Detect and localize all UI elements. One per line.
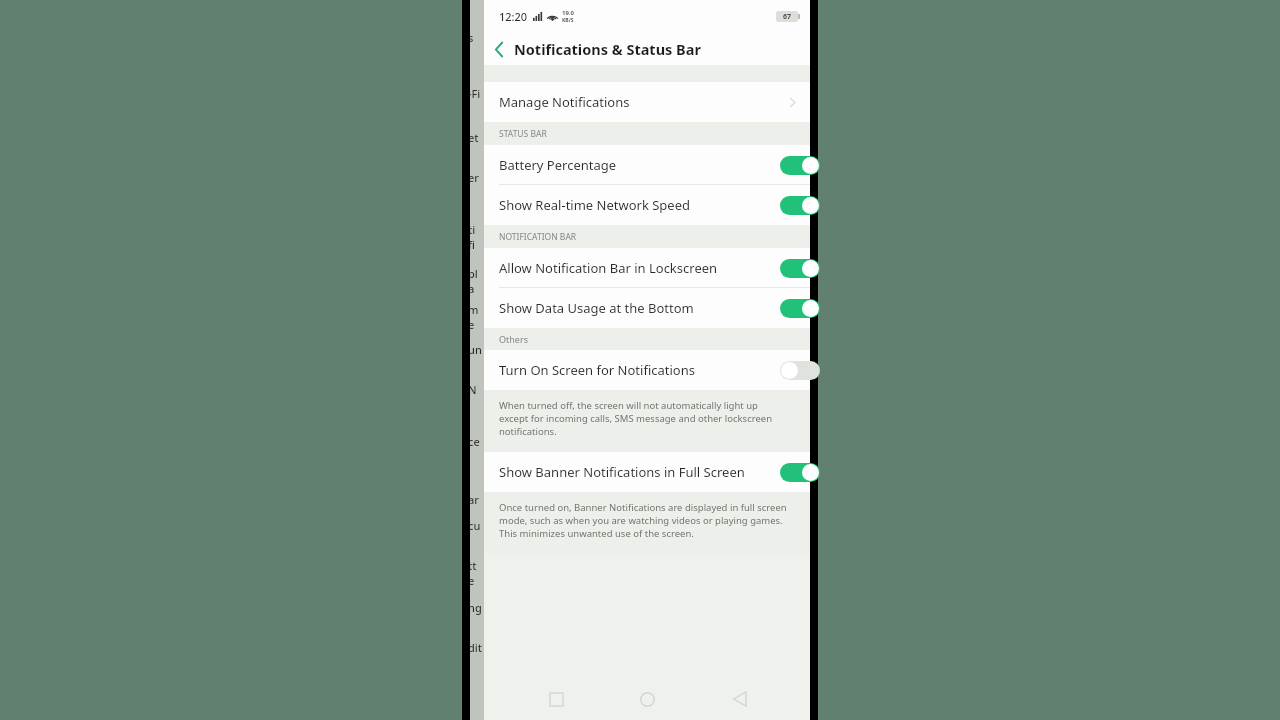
staticText: ng bbox=[468, 600, 482, 615]
staticText: Turn On Screen for Notifications bbox=[499, 361, 695, 379]
staticText: tifi bbox=[468, 222, 482, 252]
staticText: Allow Notification Bar in Lockscreen bbox=[499, 259, 718, 277]
staticText: Once turned on, Banner Notifications are… bbox=[499, 501, 788, 540]
button[interactable]: Show Banner Notifications in Full Screen bbox=[484, 452, 810, 492]
staticText: NOTIFICATION BAR bbox=[499, 231, 577, 243]
button[interactable]: Allow Notification Bar in Lockscreen bbox=[484, 248, 810, 288]
staticText: tte bbox=[468, 558, 482, 588]
staticText: pla bbox=[468, 266, 482, 296]
button[interactable]: Back bbox=[719, 679, 759, 719]
button[interactable]: Home bbox=[627, 679, 667, 719]
staticText: Show Banner Notifications in Full Screen bbox=[499, 463, 745, 481]
staticText: 12:20 bbox=[499, 9, 528, 24]
staticText: Others bbox=[499, 333, 528, 345]
staticText: dit bbox=[468, 640, 482, 655]
button[interactable]: Recent apps bbox=[536, 679, 576, 719]
button[interactable]: Turn On Screen for Notifications bbox=[484, 350, 810, 390]
button[interactable]: Manage Notifications bbox=[484, 82, 810, 122]
staticText: N bbox=[468, 382, 477, 397]
staticText: et bbox=[468, 130, 479, 145]
button[interactable]: Battery Percentage bbox=[484, 145, 810, 185]
staticText: Battery Percentage bbox=[499, 156, 617, 174]
staticText: un bbox=[468, 342, 482, 357]
staticText: ce bbox=[468, 434, 480, 449]
staticText: 19.0 bbox=[562, 9, 574, 17]
staticText: Notifications & Status Bar bbox=[514, 39, 701, 59]
button[interactable]: Show Real-time Network Speed bbox=[484, 185, 810, 225]
button[interactable]: Back bbox=[484, 34, 514, 64]
staticText: Show Data Usage at the Bottom bbox=[499, 299, 694, 317]
staticText: er bbox=[468, 170, 479, 185]
staticText: KB/S bbox=[562, 17, 574, 24]
staticText: s bbox=[468, 30, 474, 45]
staticText: STATUS BAR bbox=[499, 128, 547, 140]
staticText: -Fi bbox=[468, 86, 481, 101]
staticText: When turned off, the screen will not aut… bbox=[499, 399, 788, 438]
staticText: ar bbox=[468, 492, 479, 507]
staticText: cu bbox=[468, 518, 481, 533]
staticText: 67 bbox=[783, 12, 792, 22]
staticText: Manage Notifications bbox=[499, 93, 630, 111]
button[interactable]: Show Data Usage at the Bottom bbox=[484, 288, 810, 328]
staticText: me bbox=[468, 302, 482, 332]
staticText: Show Real-time Network Speed bbox=[499, 196, 691, 214]
